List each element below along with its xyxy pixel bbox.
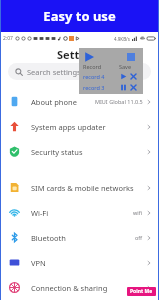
button[interactable]: SIM cards & mobile networks xyxy=(0,175,159,200)
staticText: 2:07 xyxy=(3,35,13,42)
button[interactable]: Bluetooth xyxy=(0,225,159,250)
button[interactable]: Delete xyxy=(130,84,137,91)
button[interactable]: About phone xyxy=(0,89,159,114)
button[interactable]: Search settings xyxy=(8,63,151,80)
button[interactable]: Wi-Fi xyxy=(0,200,159,225)
staticText: About phone xyxy=(31,97,77,107)
staticText: Connection & sharing xyxy=(31,283,108,293)
button[interactable]: Security status xyxy=(0,139,159,164)
button[interactable]: Point Me xyxy=(127,287,156,296)
button[interactable]: record 3 xyxy=(83,83,139,91)
staticText: record 4 xyxy=(83,73,105,80)
staticText: Save xyxy=(119,63,132,70)
button[interactable]: Pause xyxy=(120,84,127,91)
button[interactable]: Play xyxy=(120,73,127,80)
staticText: wifi xyxy=(133,209,143,216)
staticText: 4.9KB/s xyxy=(114,36,130,42)
button[interactable]: record 4 xyxy=(83,72,139,80)
staticText: VPN xyxy=(31,258,46,268)
staticText: Bluetooth xyxy=(31,233,66,243)
staticText: Wi-Fi xyxy=(31,208,49,218)
button[interactable]: VPN xyxy=(0,250,159,275)
button[interactable]: Delete xyxy=(130,73,137,80)
staticText: Search settings xyxy=(27,67,81,77)
button[interactable]: System apps updater xyxy=(0,114,159,139)
staticText: SIM cards & mobile networks xyxy=(31,183,134,193)
staticText: Settings xyxy=(57,47,103,62)
button[interactable]: Connection & sharing xyxy=(0,275,159,300)
staticText: off xyxy=(135,234,143,241)
button[interactable]: Stop xyxy=(126,52,136,62)
staticText: Record xyxy=(83,63,102,70)
button[interactable]: Record xyxy=(83,51,95,63)
staticText: Easy to use xyxy=(43,7,116,25)
staticText: record 3 xyxy=(83,84,105,91)
staticText: System apps updater xyxy=(31,122,106,132)
staticText: MIUI Global 11.0.5 xyxy=(95,98,143,105)
staticText: Security status xyxy=(31,147,83,157)
staticText: Point Me xyxy=(130,288,153,295)
